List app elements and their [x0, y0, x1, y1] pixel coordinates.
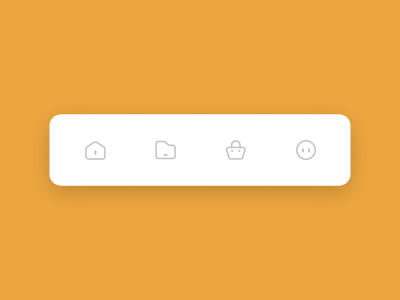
button[interactable]: Basket — [201, 114, 271, 185]
button[interactable]: Files — [130, 114, 201, 185]
button[interactable]: Home — [60, 114, 130, 185]
button[interactable]: Profile — [271, 114, 341, 185]
